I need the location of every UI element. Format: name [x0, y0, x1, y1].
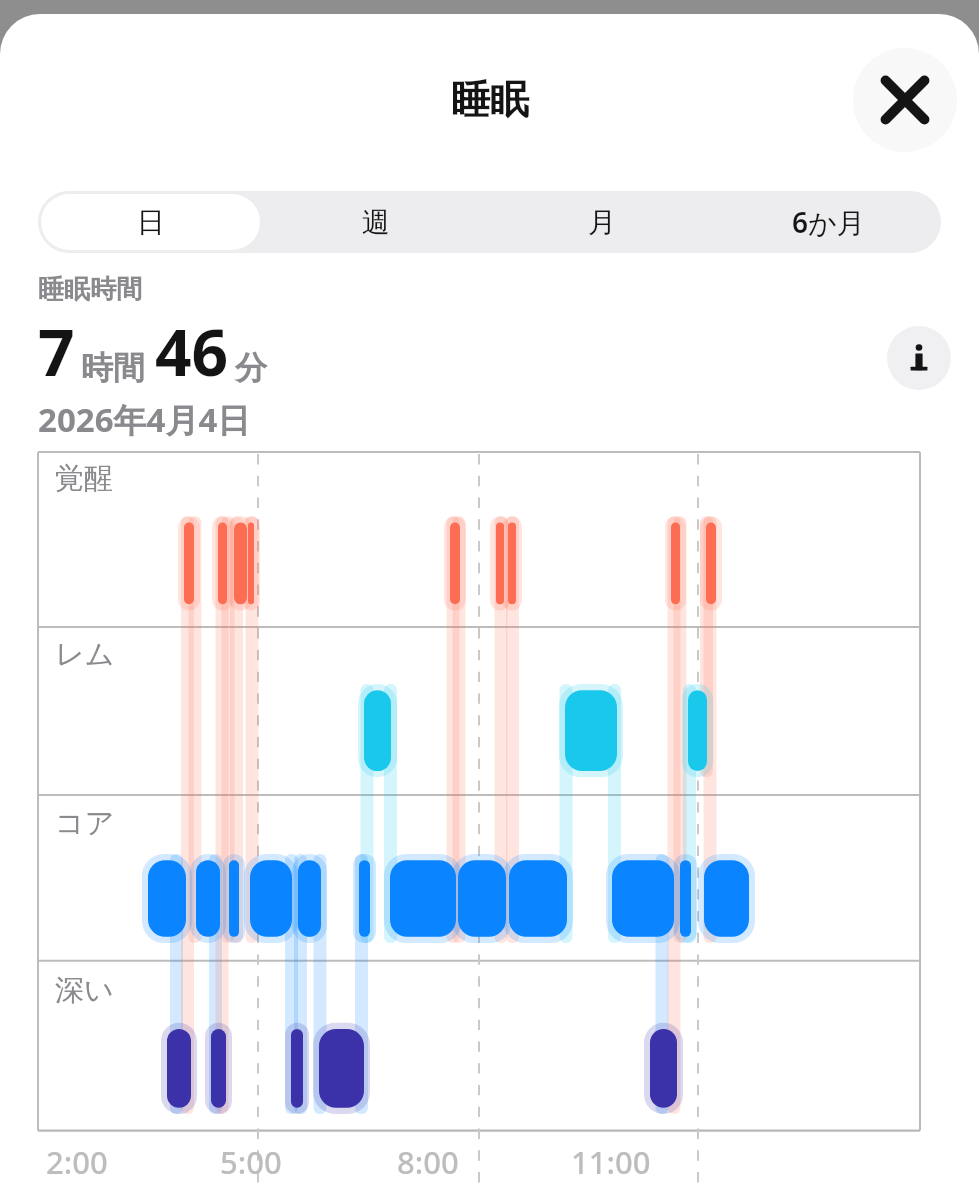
staticText: 8:00: [397, 1141, 459, 1183]
staticText: 睡眠: [451, 75, 529, 124]
staticText: 覚醒: [55, 460, 113, 497]
staticText: コア: [55, 805, 115, 842]
staticText: 11:00: [571, 1141, 651, 1183]
staticText: 週: [362, 205, 390, 240]
staticText: 46: [155, 308, 229, 395]
staticText: 日: [137, 205, 165, 240]
staticText: 6か月: [792, 203, 865, 241]
staticText: 月: [588, 205, 616, 240]
staticText: 7: [38, 308, 75, 395]
staticText: 5:00: [220, 1141, 282, 1183]
staticText: 分: [235, 348, 267, 388]
button[interactable]: 6か月: [718, 194, 938, 250]
button[interactable]: 閉じる: [853, 48, 957, 152]
staticText: 時間: [81, 348, 145, 388]
staticText: 2:00: [46, 1141, 108, 1183]
staticText: 睡眠時間: [38, 273, 142, 306]
staticText: 深い: [55, 972, 114, 1009]
staticText: 2026年4月4日: [38, 397, 251, 442]
staticText: レム: [55, 636, 115, 673]
button[interactable]: 週: [266, 194, 486, 250]
button[interactable]: 日: [41, 194, 260, 250]
button[interactable]: 月: [492, 194, 712, 250]
button[interactable]: 詳細情報: [887, 326, 951, 390]
